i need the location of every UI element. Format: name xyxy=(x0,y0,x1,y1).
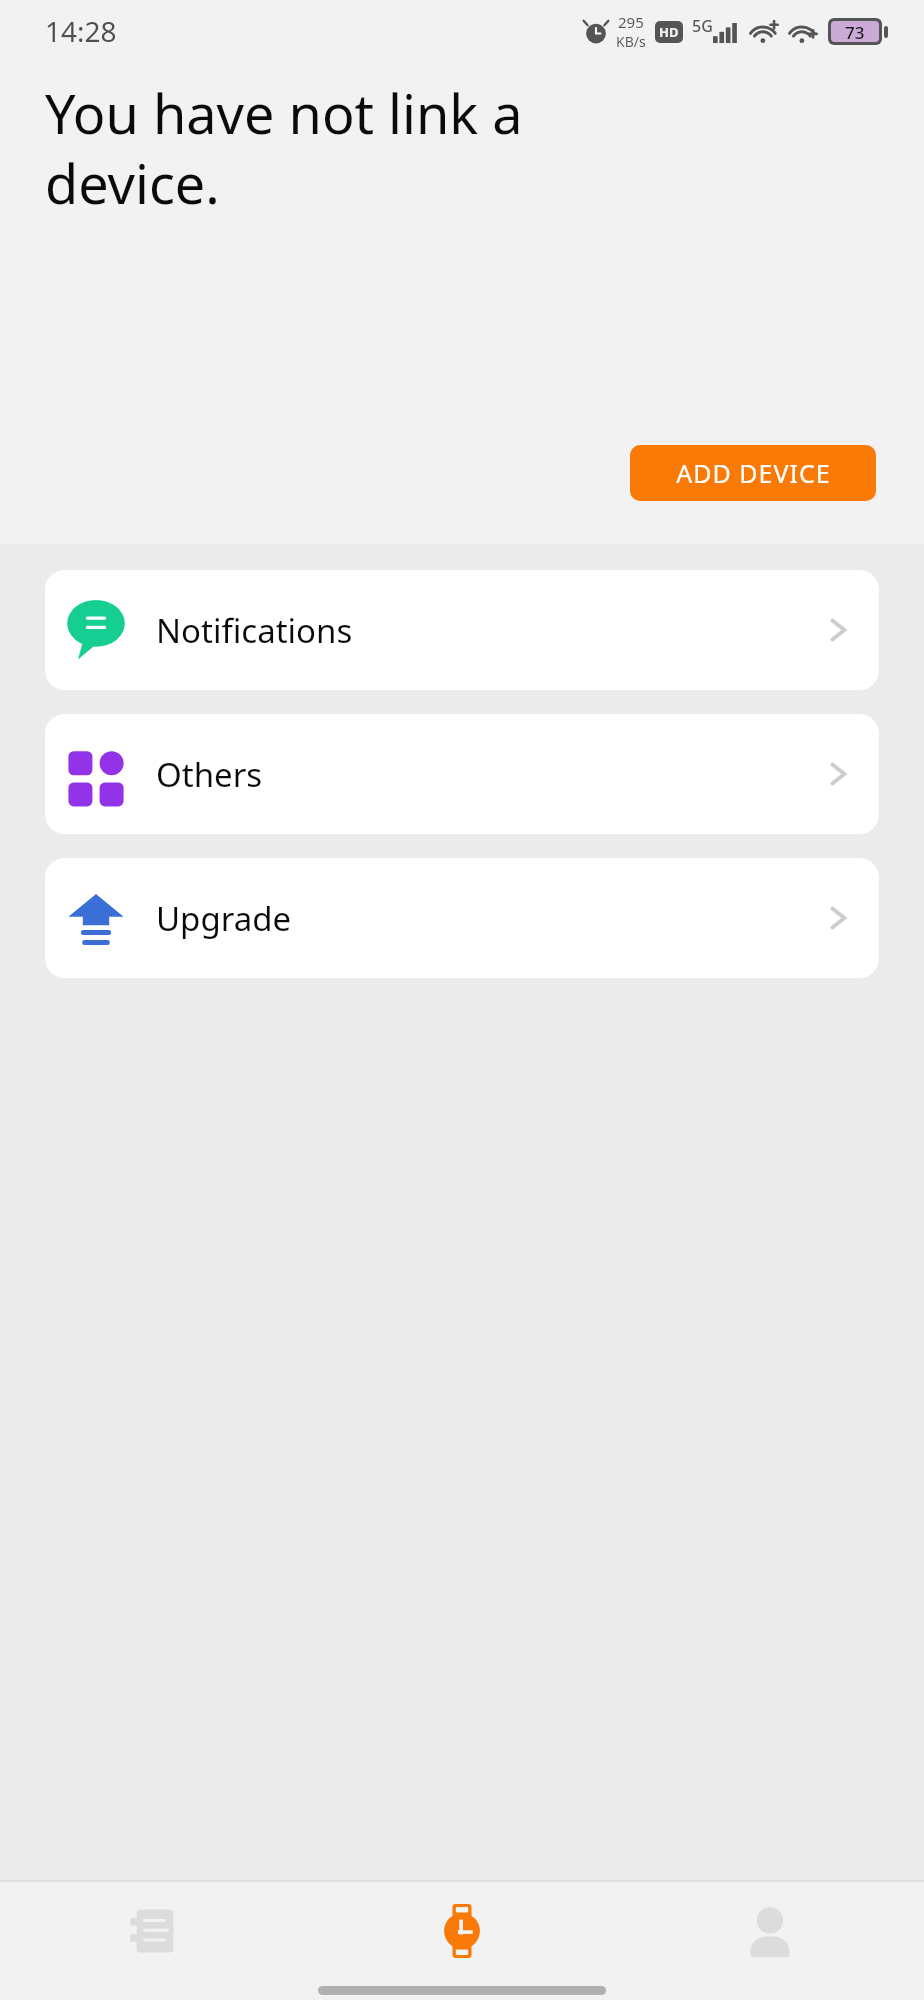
staticText: ADD DEVICE xyxy=(676,456,831,490)
staticText: HD xyxy=(659,23,679,41)
staticText: You have not link a device. xyxy=(45,76,645,220)
staticText: 14:28 xyxy=(45,12,117,50)
staticText: 5G xyxy=(692,15,713,37)
button[interactable]: Profile xyxy=(616,1882,924,1980)
button[interactable]: Upgrade xyxy=(45,858,879,978)
staticText: 73 xyxy=(845,21,865,42)
staticText: Notifications xyxy=(156,608,818,653)
staticText: Others xyxy=(156,752,818,797)
button[interactable]: Others xyxy=(45,714,879,834)
button[interactable]: Notes xyxy=(0,1882,308,1980)
button[interactable]: Watch xyxy=(308,1882,616,1980)
button[interactable]: Notifications xyxy=(45,570,879,690)
button[interactable]: ADD DEVICE xyxy=(630,445,876,501)
staticText: KB/s xyxy=(616,32,646,51)
staticText: 295 xyxy=(618,12,644,32)
staticText: Upgrade xyxy=(156,896,818,941)
